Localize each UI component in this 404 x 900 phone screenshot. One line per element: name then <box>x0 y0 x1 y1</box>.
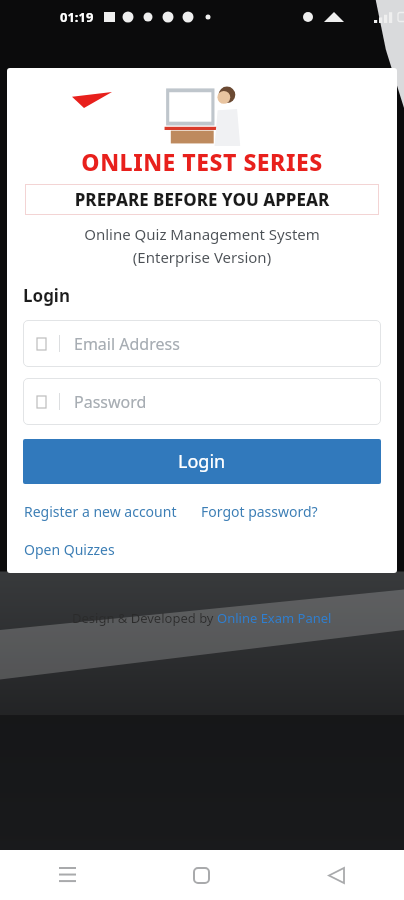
button[interactable]: Open Quizzes <box>24 540 115 559</box>
button[interactable]: Email Address <box>23 320 381 367</box>
button[interactable]: Register a new account <box>24 502 177 521</box>
button[interactable]: Login <box>23 439 381 484</box>
staticText: Login <box>23 284 71 307</box>
staticText: Password <box>74 391 147 413</box>
staticText: Online Quiz Management System <box>7 224 397 244</box>
button[interactable]: Home <box>134 850 269 900</box>
button[interactable]: Online Exam Panel <box>217 609 332 627</box>
staticText: PREPARE BEFORE YOU APPEAR <box>25 188 379 211</box>
staticText: Email Address <box>74 333 180 355</box>
staticText: 01:19 <box>60 8 94 26</box>
button[interactable]: Back <box>269 850 404 900</box>
staticText: (Enterprise Version) <box>7 247 397 267</box>
staticText: Login <box>178 449 226 474</box>
button[interactable]: Password <box>23 378 381 425</box>
staticText: Design & Developed by <box>72 609 217 627</box>
button[interactable]: Forgot password? <box>201 502 318 521</box>
staticText: ONLINE TEST SERIES <box>7 146 397 177</box>
button[interactable]: Recent apps <box>0 850 134 900</box>
